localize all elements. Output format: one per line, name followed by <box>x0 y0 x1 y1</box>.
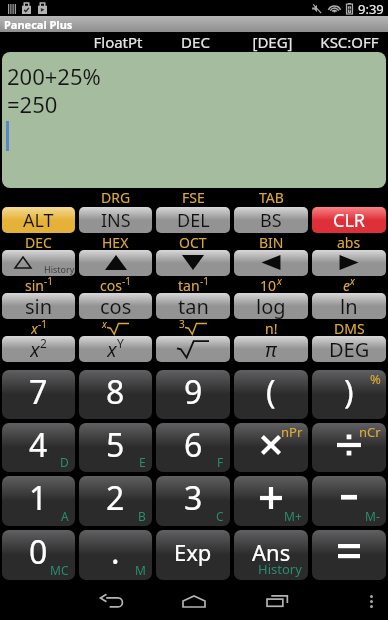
button[interactable]: 3 <box>156 476 230 526</box>
staticText: 0 <box>29 530 48 574</box>
button[interactable] <box>156 250 230 276</box>
staticText: F <box>217 454 224 470</box>
button[interactable]: nPr <box>234 423 308 472</box>
staticText: KSC:OFF <box>320 32 379 52</box>
staticText: 9 <box>184 370 203 414</box>
button[interactable]: 5 <box>79 423 152 472</box>
staticText: . <box>111 530 120 574</box>
button[interactable]: 8 <box>79 370 152 419</box>
button[interactable]: ln <box>312 293 386 319</box>
button[interactable]: M+ <box>234 476 308 526</box>
button[interactable]: x <box>2 336 75 362</box>
staticText: 7 <box>29 370 48 414</box>
button[interactable]: ( <box>234 370 308 419</box>
button[interactable]: Home <box>176 585 212 617</box>
button[interactable]: ALT <box>2 207 75 233</box>
staticText: sin <box>25 276 44 293</box>
staticText: 5 <box>106 423 125 467</box>
staticText: tan <box>178 293 209 319</box>
staticText: ) <box>344 370 354 414</box>
staticText: DEC <box>25 233 52 250</box>
button[interactable]: FloatPt <box>79 32 157 52</box>
staticText: CLR <box>333 208 366 233</box>
button[interactable]: nCr <box>312 423 386 472</box>
staticText: [DEG] <box>252 32 293 52</box>
staticText: D <box>60 454 69 470</box>
staticText: cos <box>100 293 132 319</box>
staticText: 10 <box>260 276 277 293</box>
staticText: Exp <box>174 537 212 567</box>
staticText: -1 <box>44 274 53 288</box>
button[interactable] <box>312 530 386 580</box>
staticText: History <box>44 263 75 275</box>
staticText: 2 <box>40 336 47 351</box>
staticText: π <box>265 336 277 362</box>
staticText: M+ <box>284 508 302 524</box>
button[interactable]: cos <box>79 293 152 319</box>
button[interactable] <box>156 336 230 362</box>
button[interactable]: 9 <box>156 370 230 419</box>
staticText: BS <box>260 208 282 233</box>
button[interactable]: sin <box>2 293 75 319</box>
staticText: 200+25% <box>7 61 101 91</box>
button[interactable]: . <box>79 530 152 580</box>
staticText: DMS <box>334 319 365 336</box>
staticText: -1 <box>38 317 47 331</box>
button[interactable]: [DEG] <box>234 32 311 52</box>
button[interactable] <box>312 250 386 276</box>
staticText: ( <box>266 370 276 414</box>
button[interactable] <box>79 250 152 276</box>
staticText: % <box>370 370 381 388</box>
staticText: x <box>350 274 355 288</box>
staticText: n! <box>265 319 278 336</box>
button[interactable]: DEG <box>312 336 386 362</box>
button[interactable]: x <box>79 336 152 362</box>
button[interactable]: log <box>234 293 308 319</box>
button[interactable]: DEL <box>156 207 230 233</box>
staticText: 2 <box>106 476 125 520</box>
staticText: x <box>102 317 107 331</box>
button[interactable]: INS <box>79 207 152 233</box>
button[interactable]: Panecal Plus <box>0 16 388 32</box>
button[interactable]: ) <box>312 370 386 419</box>
button[interactable]: Exp <box>156 530 230 580</box>
staticText: log <box>256 293 286 319</box>
button[interactable]: tan <box>156 293 230 319</box>
button[interactable]: 2 <box>79 476 152 526</box>
staticText: MC <box>50 562 69 578</box>
staticText: 6 <box>184 423 203 467</box>
button[interactable]: Recents <box>259 585 295 617</box>
staticText: DRG <box>101 188 131 207</box>
staticText: ALT <box>23 208 54 233</box>
button[interactable]: CLR <box>312 207 386 233</box>
button[interactable]: History <box>2 250 75 276</box>
staticText: x <box>277 274 282 288</box>
staticText: -1 <box>200 274 209 288</box>
button[interactable]: 1 <box>2 476 75 526</box>
staticText: FSE <box>182 188 205 207</box>
button[interactable]: Back <box>93 585 129 617</box>
button[interactable]: 4 <box>2 423 75 472</box>
staticText: INS <box>101 208 131 233</box>
button[interactable]: BS <box>234 207 308 233</box>
button[interactable]: More options <box>359 585 383 617</box>
staticText: nCr <box>359 423 381 441</box>
button[interactable]: KSC:OFF <box>311 32 388 52</box>
staticText: e <box>343 276 350 293</box>
button[interactable]: M- <box>312 476 386 526</box>
button[interactable]: Ans <box>234 530 308 580</box>
button[interactable] <box>234 250 308 276</box>
button[interactable]: DEC <box>157 32 234 52</box>
staticText: 1 <box>29 476 48 520</box>
staticText: Panecal Plus <box>4 17 73 32</box>
button[interactable]: 7 <box>2 370 75 419</box>
button[interactable]: 6 <box>156 423 230 472</box>
button[interactable]: π <box>234 336 308 362</box>
button[interactable]: 0 <box>2 530 75 580</box>
staticText: ln <box>340 293 358 319</box>
staticText: nPr <box>281 423 303 441</box>
staticText: FloatPt <box>93 32 143 52</box>
staticText: M- <box>365 508 380 524</box>
button[interactable]: 200+25% <box>2 52 386 188</box>
staticText: M <box>135 562 146 578</box>
